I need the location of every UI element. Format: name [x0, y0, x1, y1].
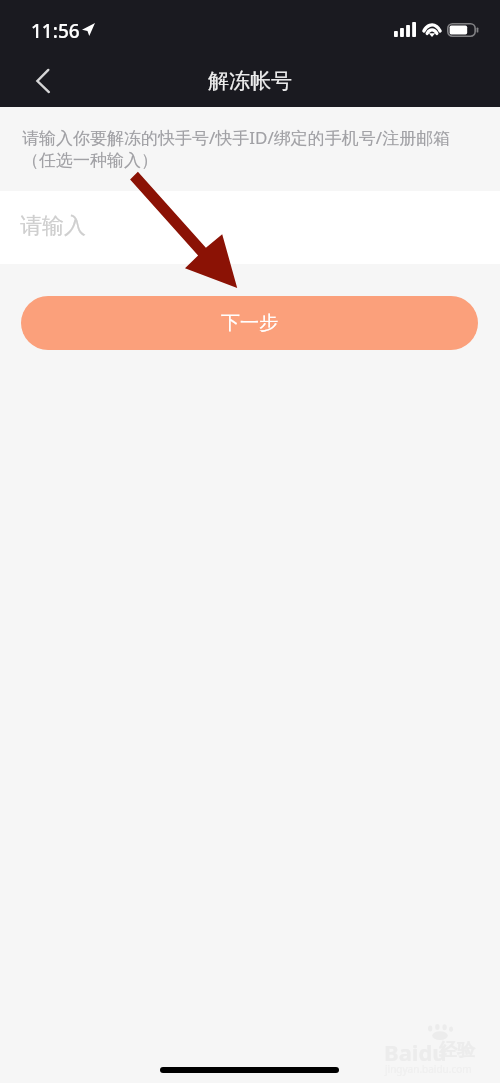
button[interactable]: 请输入	[0, 191, 500, 264]
button[interactable]: Back	[14, 55, 66, 107]
staticText: 解冻帐号	[208, 68, 292, 94]
staticText: Baidu	[384, 1037, 447, 1067]
staticText: 下一步	[221, 311, 278, 335]
staticText: 请输入	[20, 212, 86, 240]
button[interactable]: 下一步	[21, 296, 478, 350]
staticText: 11:56	[31, 18, 80, 44]
staticText: 请输入你要解冻的快手号/快手ID/绑定的手机号/注册邮箱 （任选一种输入）	[22, 126, 500, 171]
staticText: 经验	[439, 1039, 475, 1062]
